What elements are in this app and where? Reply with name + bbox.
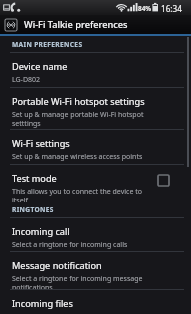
staticText: Test mode: [12, 172, 57, 185]
staticText: Incoming call: [12, 225, 70, 238]
staticText: Message notification: [12, 259, 102, 272]
staticText: MAIN PREFERENCES: [12, 40, 83, 49]
staticText: Select a ringtone for incoming message n…: [12, 274, 143, 289]
staticText: Wi-Fi settings: [12, 137, 70, 150]
button[interactable]: App icon: [0, 15, 191, 34]
other: App icon: [5, 19, 17, 31]
button[interactable]: Portable Wi-Fi hotspot settings: [0, 88, 191, 129]
staticText: Set up & manage wireless access points: [12, 152, 143, 162]
staticText: This allows you to connect the device to…: [12, 187, 142, 202]
staticText: Incoming files: [12, 297, 73, 310]
staticText: 84%: [138, 4, 152, 13]
button[interactable]: Incoming call: [0, 218, 191, 251]
staticText: RINGTONES: [12, 205, 54, 214]
staticText: Device name: [12, 60, 68, 73]
other: Test mode checkbox: [158, 175, 169, 186]
staticText: 16:34: [161, 3, 182, 14]
staticText: Wi-Fi Talkie preferences: [24, 18, 128, 31]
staticText: LG-D802: [12, 75, 40, 85]
button[interactable]: Message notification: [0, 252, 191, 289]
button[interactable]: Test mode: [0, 165, 191, 202]
staticText: Select a ringtone for incoming calls: [12, 240, 128, 250]
button[interactable]: Incoming files: [0, 290, 191, 314]
staticText: Portable Wi-Fi hotspot settings: [12, 95, 145, 108]
staticText: Set up & manage portable Wi-Fi hotspot s…: [12, 110, 144, 128]
button[interactable]: Device name: [0, 53, 191, 87]
button[interactable]: Wi-Fi settings: [0, 130, 191, 164]
